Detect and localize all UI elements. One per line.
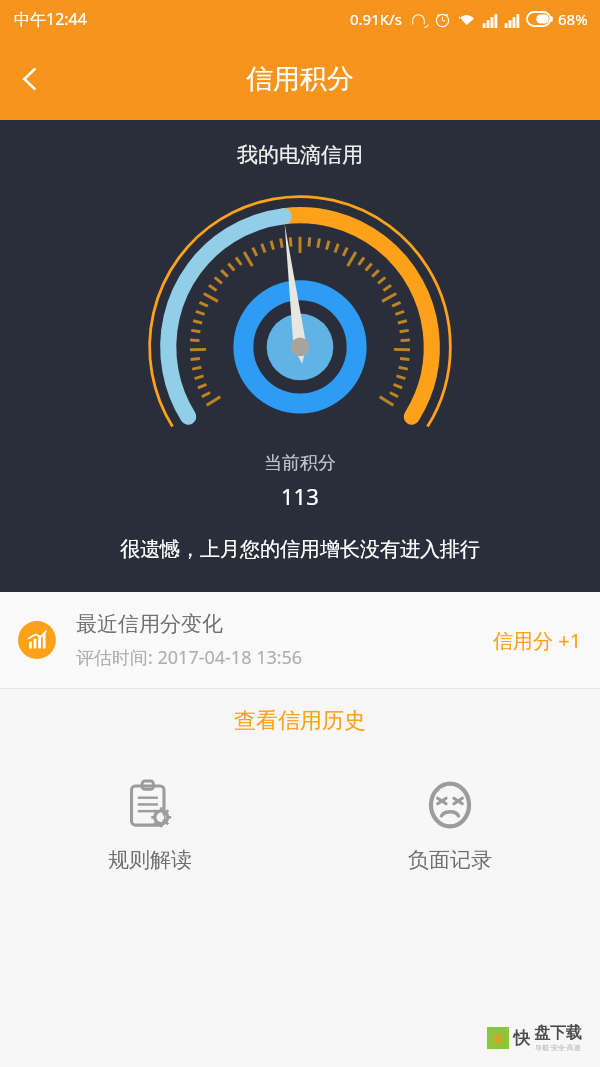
staticText: 中午12:44 — [14, 8, 87, 30]
button[interactable]: 最近信用分变化 — [0, 592, 600, 688]
button[interactable]: 负面记录 — [300, 767, 600, 883]
staticText: K — [493, 1028, 503, 1048]
staticText: 导航·安全·高速 — [535, 1043, 581, 1053]
staticText: 盘下载 — [534, 1023, 582, 1043]
button[interactable]: 查看信用历史 — [0, 689, 600, 753]
staticText: 快 — [513, 1028, 530, 1049]
button[interactable]: 规则解读 — [0, 767, 300, 883]
staticText: 负面记录 — [408, 847, 492, 873]
staticText: 我的电滴信用 — [237, 142, 363, 168]
staticText: 最近信用分变化 — [76, 611, 223, 637]
button[interactable]: Back — [0, 49, 60, 109]
staticText: 查看信用历史 — [234, 707, 366, 735]
staticText: 很遗憾，上月您的信用增长没有进入排行 — [120, 537, 480, 562]
staticText: 当前积分 — [264, 452, 336, 475]
staticText: 113 — [281, 481, 319, 511]
staticText: 信用积分 — [246, 62, 354, 96]
staticText: 评估时间: 2017-04-18 13:56 — [76, 645, 303, 670]
staticText: 规则解读 — [108, 847, 192, 873]
staticText: 0.91K/s — [350, 9, 402, 29]
staticText: 68% — [558, 9, 588, 29]
staticText: 信用分 +1 — [493, 627, 582, 654]
